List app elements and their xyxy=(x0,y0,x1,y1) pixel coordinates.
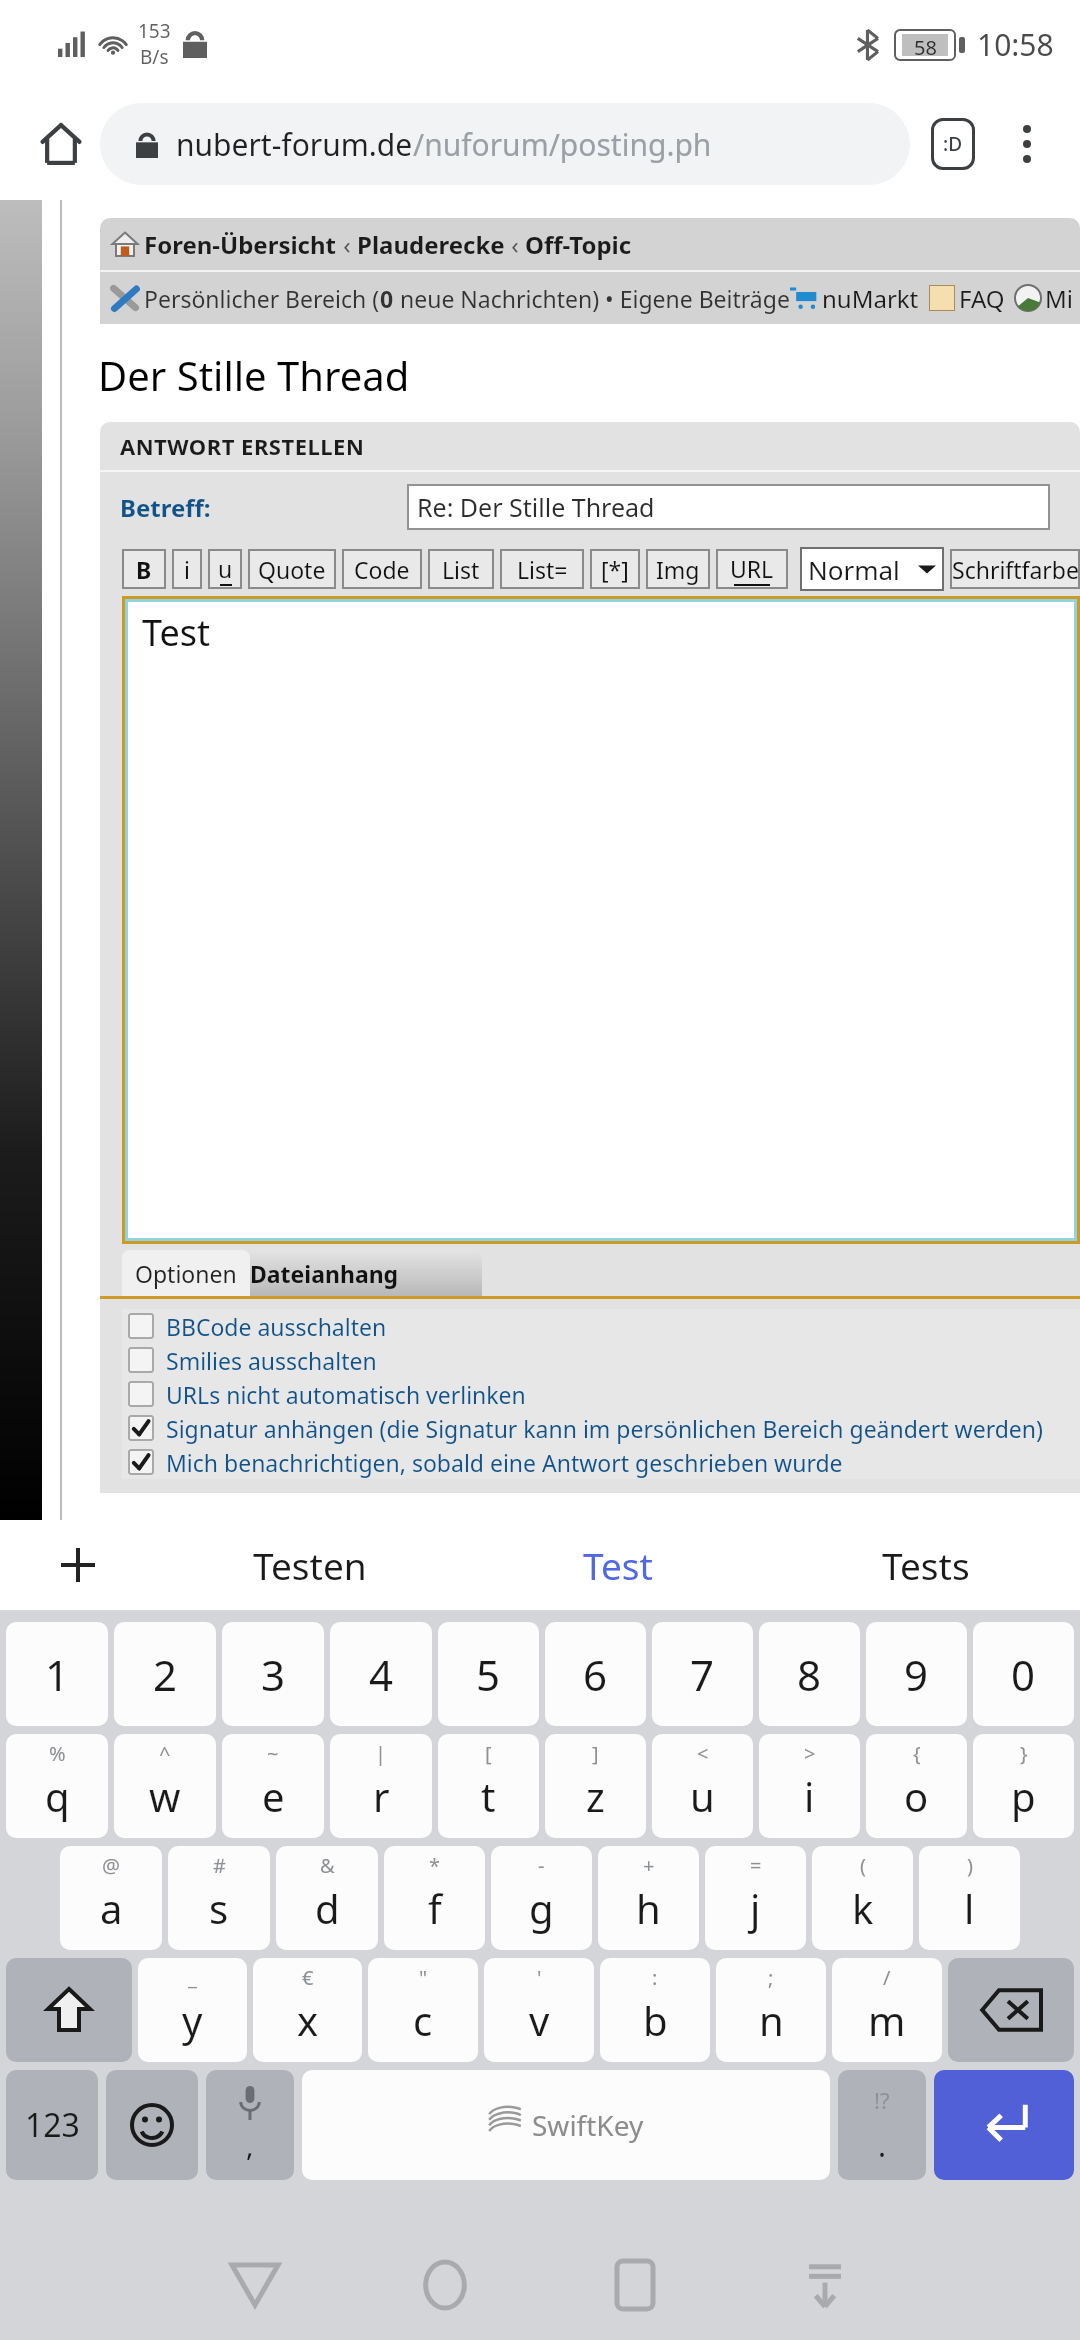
button[interactable]: ^ xyxy=(114,1734,216,1838)
button[interactable]: 2 xyxy=(114,1622,216,1726)
button[interactable]: Back xyxy=(160,2230,350,2340)
button[interactable]: ( xyxy=(812,1846,913,1950)
button[interactable]: nuMarkt xyxy=(822,282,919,315)
button[interactable]: > xyxy=(759,1734,860,1838)
button[interactable]: ~ xyxy=(222,1734,324,1838)
button[interactable]: / xyxy=(832,1958,942,2062)
staticText: w xyxy=(149,1769,181,1823)
button[interactable]: @ xyxy=(60,1846,162,1950)
button[interactable]: i xyxy=(172,549,202,589)
button[interactable]: Normal xyxy=(800,547,944,591)
staticText: 8 xyxy=(797,1646,822,1703)
button[interactable]: ; xyxy=(716,1958,826,2062)
staticText: t xyxy=(481,1769,496,1823)
button[interactable]: Test xyxy=(128,602,1074,1238)
staticText: 7 xyxy=(690,1646,715,1703)
button[interactable]: [*] xyxy=(590,549,640,589)
button[interactable]: 5 xyxy=(438,1622,539,1726)
button[interactable]: # xyxy=(168,1846,270,1950)
button[interactable]: 9 xyxy=(866,1622,967,1726)
button[interactable]: Home xyxy=(350,2230,540,2340)
button[interactable]: Backspace xyxy=(948,1958,1074,2062)
button[interactable]: Quote xyxy=(248,549,336,589)
button[interactable]: Code xyxy=(342,549,422,589)
staticText: h xyxy=(636,1881,661,1935)
button[interactable]: u xyxy=(208,549,242,589)
button[interactable]: Testen xyxy=(155,1520,464,1610)
button[interactable]: 7 xyxy=(652,1622,753,1726)
staticText: . xyxy=(878,2125,887,2166)
button[interactable]: Emoji xyxy=(106,2070,198,2180)
staticText: B xyxy=(136,554,152,585)
button[interactable]: Home xyxy=(22,105,100,183)
button[interactable]: Space xyxy=(302,2070,830,2180)
button[interactable]: Dateianhang hochladen xyxy=(250,1250,482,1296)
button[interactable]: Enter xyxy=(934,2070,1074,2180)
button[interactable]: Test xyxy=(464,1520,772,1610)
button[interactable]: - xyxy=(491,1846,592,1950)
button[interactable]: Add word xyxy=(0,1520,155,1610)
button[interactable]: 1 xyxy=(6,1622,108,1726)
staticText: o xyxy=(904,1769,929,1823)
button[interactable]: Signatur anhängen (die Signatur kann im … xyxy=(122,1411,1080,1445)
staticText: y xyxy=(182,1993,203,2047)
staticText: ANTWORT ERSTELLEN xyxy=(120,431,365,461)
staticText: { xyxy=(913,1740,921,1767)
button[interactable]: List xyxy=(428,549,494,589)
staticText: b xyxy=(643,1993,668,2047)
button[interactable]: Mich benachrichtigen, sobald eine Antwor… xyxy=(122,1445,1080,1479)
button[interactable]: URL xyxy=(716,549,788,589)
button[interactable]: < xyxy=(652,1734,753,1838)
button[interactable]: ] xyxy=(545,1734,646,1838)
button[interactable]: Img xyxy=(646,549,710,589)
button[interactable]: | xyxy=(330,1734,432,1838)
button[interactable]: Optionen xyxy=(122,1250,250,1296)
button[interactable]: BBCode ausschalten xyxy=(122,1309,1080,1343)
button[interactable]: Re: Der Stille Thread xyxy=(407,484,1050,530)
button[interactable]: = xyxy=(705,1846,806,1950)
button[interactable]: nubert-forum.de xyxy=(100,103,910,185)
staticText: ) xyxy=(967,1852,973,1879)
button[interactable]: * xyxy=(384,1846,485,1950)
button[interactable]: € xyxy=(253,1958,362,2062)
staticText: Img xyxy=(656,554,700,585)
staticText: n xyxy=(759,1993,784,2047)
button[interactable]: URLs nicht automatisch verlinken xyxy=(122,1377,1080,1411)
button[interactable]: & xyxy=(276,1846,378,1950)
button[interactable]: [ xyxy=(438,1734,539,1838)
button[interactable]: Schriftfarbe xyxy=(950,549,1080,589)
button[interactable]: Persönlicher Bereich ( xyxy=(144,283,790,314)
button[interactable]: 123 xyxy=(6,2070,98,2180)
button[interactable]: FAQ xyxy=(959,282,1005,315)
button[interactable]: 0 xyxy=(973,1622,1074,1726)
button[interactable]: More options xyxy=(996,113,1058,175)
button[interactable]: Profile xyxy=(910,101,996,187)
button[interactable]: + xyxy=(598,1846,699,1950)
button[interactable]: 8 xyxy=(759,1622,860,1726)
staticText: x xyxy=(297,1993,319,2047)
button[interactable]: : xyxy=(600,1958,710,2062)
staticText: r xyxy=(373,1769,390,1823)
button[interactable]: Tests xyxy=(772,1520,1080,1610)
button[interactable]: B xyxy=(122,549,166,589)
button[interactable]: { xyxy=(866,1734,967,1838)
button[interactable]: 4 xyxy=(330,1622,432,1726)
button[interactable]: % xyxy=(6,1734,108,1838)
staticText: j xyxy=(750,1881,761,1935)
button[interactable]: " xyxy=(368,1958,478,2062)
button[interactable]: ) xyxy=(919,1846,1020,1950)
button[interactable]: Hide keyboard xyxy=(730,2230,920,2340)
button[interactable]: _ xyxy=(138,1958,247,2062)
button[interactable]: List= xyxy=(500,549,584,589)
button[interactable]: 6 xyxy=(545,1622,646,1726)
button[interactable]: Smilies ausschalten xyxy=(122,1343,1080,1377)
button[interactable]: !? xyxy=(838,2070,926,2180)
staticText: v xyxy=(529,1993,550,2047)
button[interactable]: Shift xyxy=(6,1958,132,2062)
button[interactable]: Foren-Übersicht xyxy=(144,228,632,261)
button[interactable]: Voice input and comma xyxy=(206,2070,294,2180)
button[interactable]: 3 xyxy=(222,1622,324,1726)
button[interactable]: Recents xyxy=(540,2230,730,2340)
button[interactable]: } xyxy=(973,1734,1074,1838)
button[interactable]: ' xyxy=(484,1958,594,2062)
